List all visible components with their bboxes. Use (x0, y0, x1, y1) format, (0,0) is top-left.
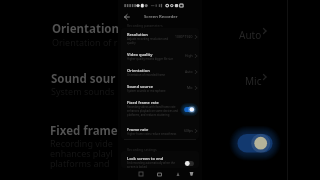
staticText: 1080*1920 (175, 34, 193, 39)
staticText: Auto (185, 69, 193, 74)
staticText: High (185, 53, 193, 58)
button[interactable]: Video quality (121, 50, 199, 60)
staticText: Orientation (52, 21, 119, 37)
staticText: Frame rate (127, 127, 149, 132)
staticText: Fixed frame (50, 123, 118, 139)
staticText: Orientation (127, 68, 150, 73)
staticText: Sound sour (51, 71, 116, 87)
staticText: Fixed frame rate (127, 100, 159, 105)
staticText: Screen Recorder (144, 13, 178, 19)
staticText: Orientation of recorded frame (127, 73, 166, 77)
staticText: Recording parameters (127, 23, 163, 28)
staticText: Sound source (127, 84, 154, 89)
button[interactable]: Resolution (121, 30, 199, 43)
button[interactable]: Lock screen to end (181, 158, 197, 169)
button[interactable]: Recent apps (136, 169, 146, 179)
staticText: Higher frame rates reduce smoothness (127, 132, 177, 136)
staticText: Adjusts recording resolution and quality (127, 37, 169, 45)
button[interactable]: Lock screen to end (121, 154, 199, 168)
button[interactable]: Orientation (121, 66, 199, 76)
button[interactable]: Fixed frame rate (181, 104, 197, 115)
staticText: 60fps (184, 128, 193, 133)
staticText: System sounds (51, 85, 115, 97)
button[interactable]: Frame rate (121, 125, 199, 135)
staticText: Higher quality means bigger file size (127, 57, 174, 61)
staticText: Recording videos with fixed frame rate e… (127, 105, 179, 117)
staticText: Recording settings (127, 147, 157, 152)
button[interactable]: Fixed frame rate (121, 98, 199, 115)
button[interactable]: Back (122, 12, 132, 22)
staticText: Orientation of r (52, 36, 118, 48)
button[interactable]: Home (154, 169, 164, 179)
staticText: Mic (245, 74, 262, 88)
staticText: Mic (187, 85, 193, 90)
staticText: Lock screen to end (127, 156, 164, 161)
staticText: Recording vide enhances playl platforms … (50, 137, 113, 169)
button[interactable]: Sound source (121, 82, 199, 92)
staticText: Video quality (127, 52, 153, 57)
staticText: Resolution (127, 32, 148, 37)
staticText: System sounds or microphone (127, 89, 166, 93)
staticText: Auto (239, 28, 262, 42)
button[interactable]: Screen record (186, 168, 196, 178)
staticText: End recording automatically when the scr… (127, 161, 175, 169)
button[interactable]: Back (173, 169, 183, 179)
